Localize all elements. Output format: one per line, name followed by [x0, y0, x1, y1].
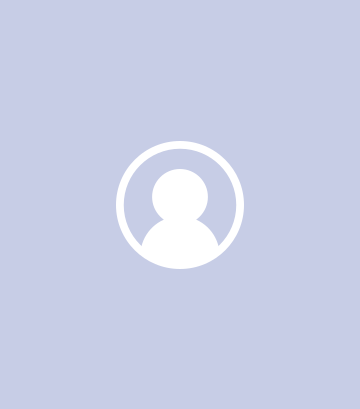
button[interactable]: Profile photo: [0, 0, 360, 409]
